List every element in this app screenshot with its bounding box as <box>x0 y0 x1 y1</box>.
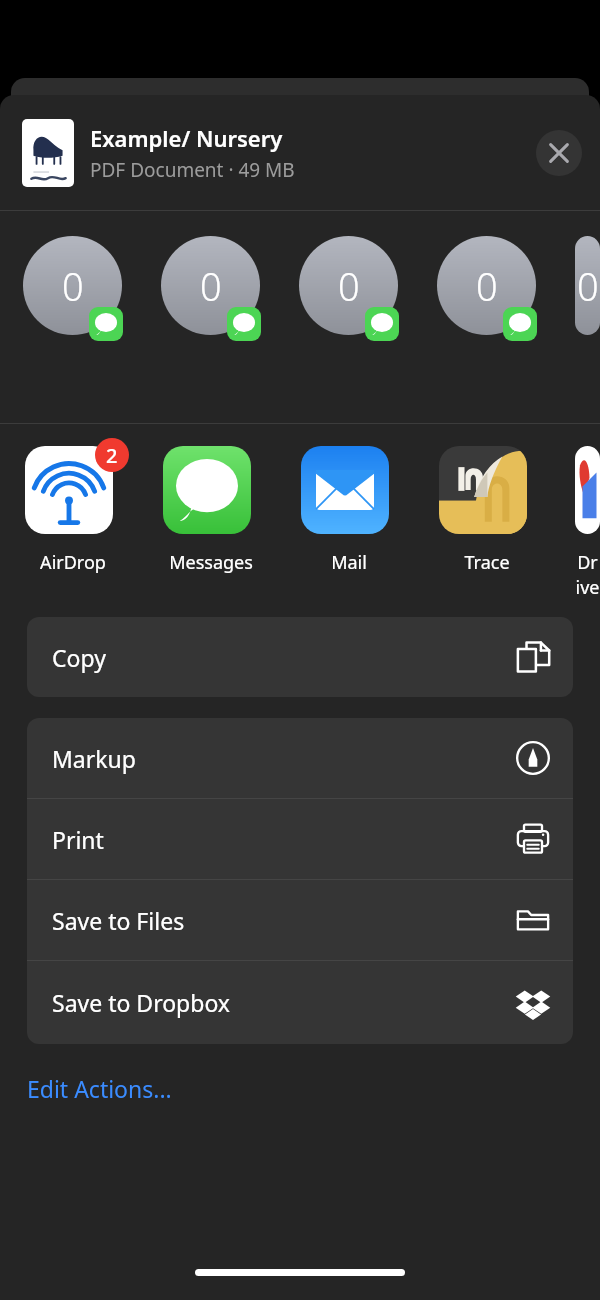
staticText: Markup <box>52 743 136 774</box>
button[interactable]: Contact <box>437 236 536 354</box>
staticText: 0 <box>62 260 84 312</box>
button[interactable]: Save to Files <box>27 880 573 960</box>
button[interactable]: Trace <box>437 446 536 575</box>
staticText: Trace <box>464 550 510 575</box>
staticText: Save to Files <box>52 905 185 936</box>
staticText: Mail <box>331 550 367 575</box>
button[interactable]: Markup <box>27 718 573 798</box>
staticText: AirDrop <box>40 550 106 575</box>
staticText: 0 <box>476 260 498 312</box>
staticText: 0 <box>200 260 222 312</box>
staticText: 0 <box>338 260 360 312</box>
button[interactable]: Copy <box>27 617 573 697</box>
button[interactable]: Save to Dropbox <box>27 961 573 1044</box>
button[interactable]: Mail <box>299 446 398 575</box>
staticText: 2 <box>106 442 118 469</box>
button[interactable]: Print <box>27 799 573 879</box>
staticText: Example/ Nursery <box>90 123 283 153</box>
staticText: Messages <box>169 550 253 575</box>
staticText: PDF Document · 49 MB <box>90 157 295 183</box>
button[interactable]: Contact <box>161 236 260 354</box>
button[interactable]: Close <box>536 130 582 176</box>
button[interactable]: Drive <box>575 446 600 595</box>
button[interactable]: Messages <box>161 446 260 575</box>
button[interactable]: 2 <box>23 446 122 575</box>
staticText: Drive <box>575 550 600 595</box>
staticText: Save to Dropbox <box>52 987 231 1018</box>
button[interactable]: Contact <box>299 236 398 354</box>
staticText: Edit Actions... <box>27 1073 172 1104</box>
button[interactable]: Contact <box>575 236 600 354</box>
staticText: Print <box>52 824 104 855</box>
staticText: Copy <box>52 642 106 673</box>
button[interactable]: Edit Actions... <box>27 1066 172 1110</box>
button[interactable]: Contact <box>23 236 122 354</box>
staticText: 0 <box>577 260 599 312</box>
